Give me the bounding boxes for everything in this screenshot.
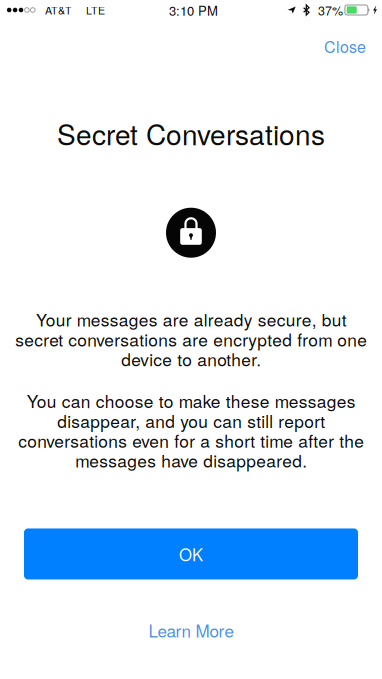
staticText: 37% <box>318 1 343 19</box>
staticText: Close <box>324 35 366 58</box>
button[interactable]: OK <box>24 528 358 579</box>
staticText: Learn More <box>148 618 233 642</box>
staticText: Secret Conversations <box>57 113 325 153</box>
staticText: LTE <box>86 2 105 18</box>
staticText: 3:10 PM <box>169 1 218 19</box>
button[interactable]: Learn More <box>134 612 247 648</box>
staticText: OK <box>179 542 203 566</box>
staticText: Your messages are already secure, but se… <box>15 307 367 371</box>
staticText: You can choose to make these messages di… <box>18 388 364 472</box>
button[interactable]: Close <box>313 27 377 66</box>
staticText: AT&T <box>45 2 72 18</box>
